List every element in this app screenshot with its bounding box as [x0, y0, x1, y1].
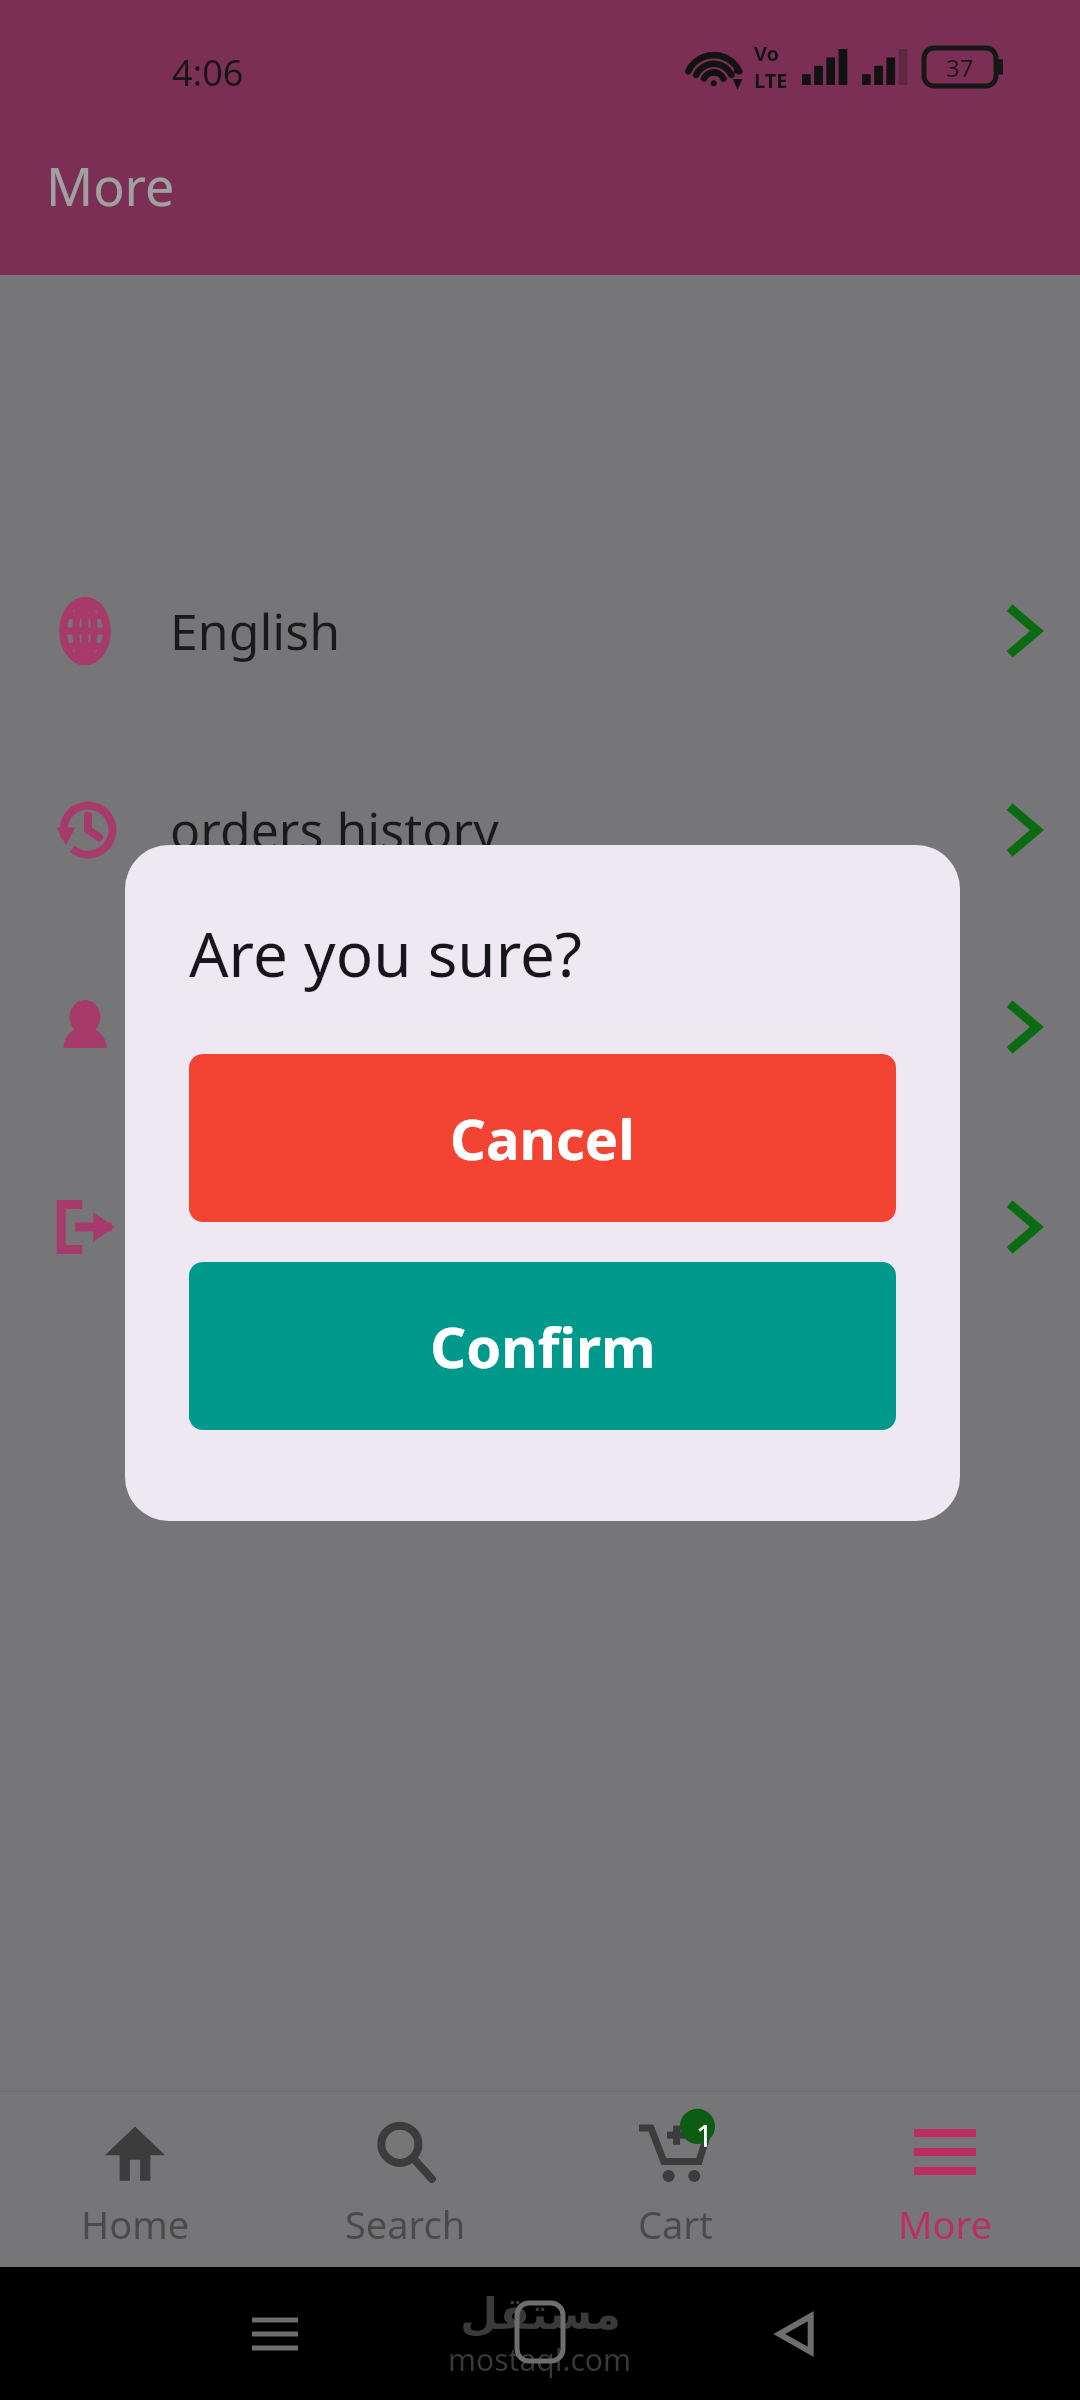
button[interactable]: Back [750, 2289, 840, 2379]
button[interactable]: Cancel [189, 1054, 896, 1222]
staticText: Cart [638, 2198, 713, 2250]
staticText: orders history [170, 796, 499, 864]
button[interactable]: English [0, 571, 1080, 691]
staticText: مستقل [460, 2288, 621, 2339]
button[interactable]: Search [270, 2090, 540, 2267]
staticText: More [898, 2198, 992, 2250]
button[interactable]: Home [0, 2090, 270, 2267]
button[interactable] [0, 1167, 1080, 1287]
staticText: Search [345, 2198, 466, 2250]
button[interactable]: More [810, 2090, 1080, 2267]
staticText: Vo [754, 40, 780, 67]
staticText: mostaql.com [448, 2339, 632, 2380]
staticText: English [170, 597, 341, 665]
button[interactable]: orders history [0, 770, 1080, 890]
button[interactable]: 1 [540, 2090, 810, 2267]
staticText: 4:06 [172, 48, 244, 97]
staticText: Home [81, 2198, 190, 2250]
staticText: LTE [754, 67, 788, 94]
button[interactable]: Create Account [0, 967, 1080, 1087]
staticText: 1 [696, 2115, 714, 2156]
staticText: Create Account [170, 993, 527, 1061]
button[interactable]: Home [517, 2303, 563, 2361]
staticText: Confirm [430, 1308, 656, 1384]
staticText: More [46, 150, 175, 221]
staticText: 37 [946, 51, 974, 84]
button[interactable]: Confirm [189, 1262, 896, 1430]
staticText: Are you sure? [189, 911, 582, 995]
button[interactable]: Recent apps [230, 2289, 320, 2379]
staticText: Cancel [450, 1100, 635, 1176]
